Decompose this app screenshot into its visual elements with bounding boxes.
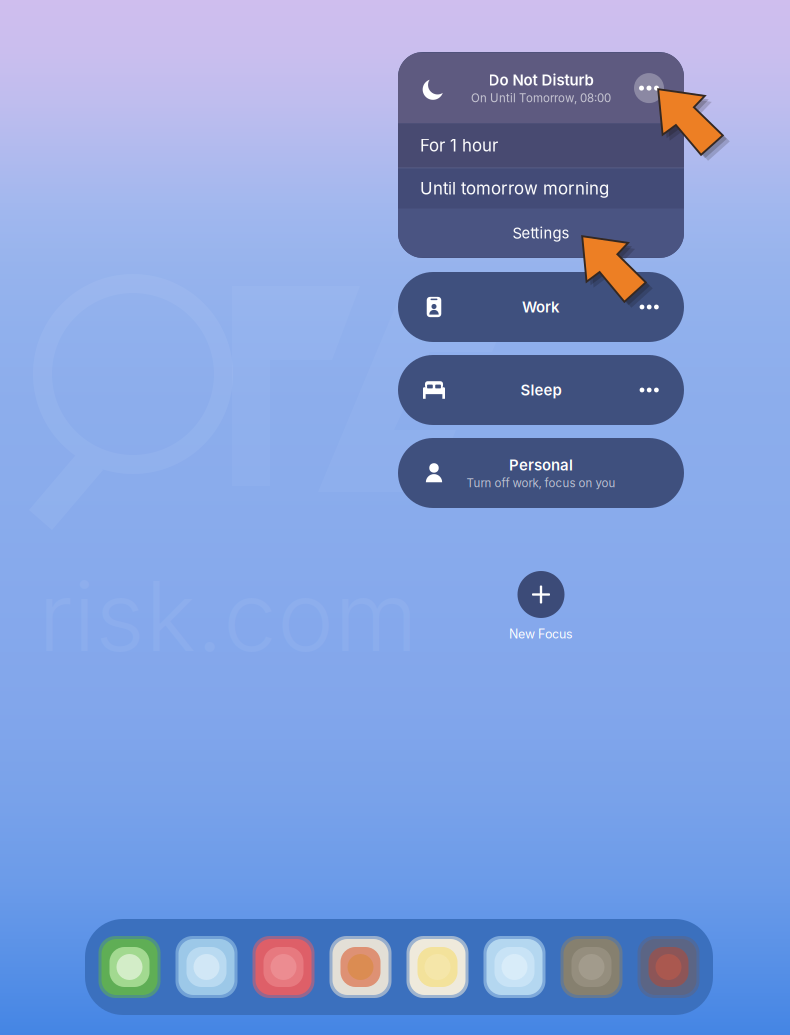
- button[interactable]: For 1 hour: [398, 123, 684, 167]
- button[interactable]: New Focus: [398, 571, 684, 644]
- staticText: Turn off work, focus on you: [466, 476, 615, 490]
- staticText: Until tomorrow morning: [420, 178, 609, 199]
- button[interactable]: Settings: [398, 208, 684, 257]
- staticText: For 1 hour: [420, 135, 498, 156]
- button[interactable]: Do Not Disturb: [398, 52, 684, 123]
- button[interactable]: App: [483, 936, 545, 998]
- button[interactable]: Work: [398, 272, 684, 342]
- button[interactable]: App: [406, 936, 468, 998]
- staticText: Do Not Disturb: [488, 71, 593, 89]
- button[interactable]: App: [175, 936, 237, 998]
- button[interactable]: App: [329, 936, 391, 998]
- button[interactable]: Until tomorrow morning: [398, 168, 684, 208]
- staticText: On Until Tomorrow, 08:00: [471, 91, 611, 105]
- button[interactable]: Personal: [398, 438, 684, 508]
- staticText: Personal: [509, 456, 573, 474]
- button[interactable]: App: [98, 936, 160, 998]
- button[interactable]: App: [252, 936, 314, 998]
- button[interactable]: App: [637, 936, 699, 998]
- staticText: Settings: [512, 224, 569, 242]
- staticText: Sleep: [520, 381, 561, 399]
- button[interactable]: Sleep: [398, 355, 684, 425]
- button[interactable]: App: [560, 936, 622, 998]
- staticText: New Focus: [509, 626, 573, 641]
- staticText: Work: [522, 298, 560, 316]
